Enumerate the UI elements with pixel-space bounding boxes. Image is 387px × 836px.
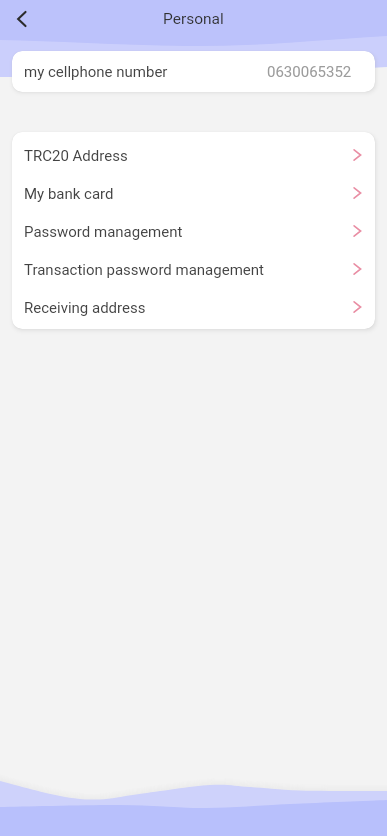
button[interactable]: Back: [4, 1, 40, 37]
button[interactable]: My bank card: [12, 173, 375, 211]
staticText: 0630065352: [267, 63, 352, 81]
button[interactable]: TRC20 Address: [12, 135, 375, 173]
staticText: Transaction password management: [24, 261, 353, 279]
staticText: Receiving address: [24, 299, 353, 317]
staticText: my cellphone number: [24, 63, 168, 81]
staticText: My bank card: [24, 185, 353, 203]
staticText: Personal: [163, 10, 224, 28]
button[interactable]: Transaction password management: [12, 249, 375, 287]
button[interactable]: my cellphone number: [12, 51, 375, 92]
button[interactable]: Password management: [12, 211, 375, 249]
staticText: Password management: [24, 223, 353, 241]
staticText: TRC20 Address: [24, 147, 353, 165]
button[interactable]: Receiving address: [12, 287, 375, 325]
